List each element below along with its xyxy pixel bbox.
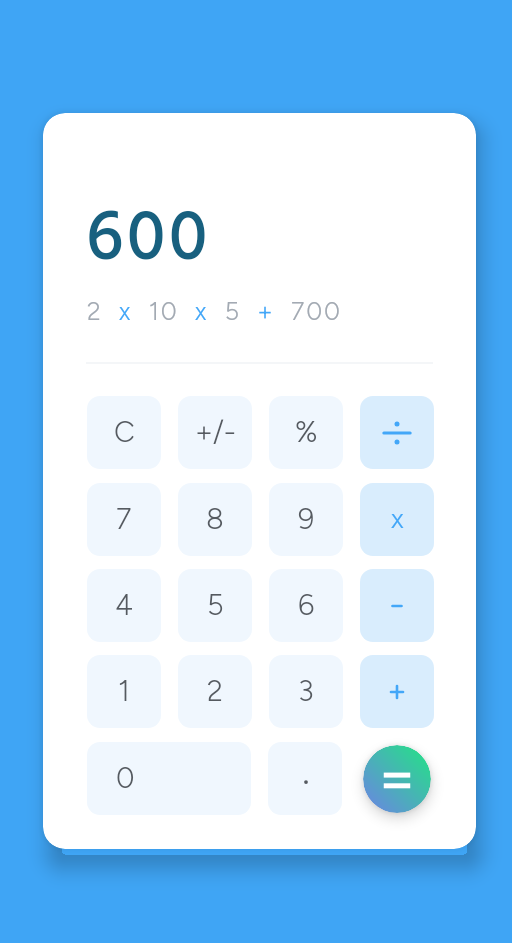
button[interactable]: +/- (178, 396, 252, 469)
button[interactable]: Subtract (360, 569, 434, 642)
button[interactable]: Equals (363, 745, 431, 813)
button[interactable]: 5 (178, 569, 252, 642)
button[interactable]: Add (360, 655, 434, 728)
staticText: 4 (115, 587, 133, 622)
button[interactable]: 7 (87, 483, 161, 556)
button[interactable]: 4 (87, 569, 161, 642)
button[interactable]: 8 (178, 483, 252, 556)
button[interactable]: Divide (360, 396, 434, 469)
button[interactable]: Multiply (360, 483, 434, 556)
staticText: 2 x 10 x 5 + 700 (87, 296, 342, 326)
staticText: 6 (298, 587, 315, 622)
staticText: 1 (118, 673, 130, 708)
button[interactable]: 9 (269, 483, 343, 556)
button[interactable]: 2 (178, 655, 252, 728)
staticText: 5 (207, 587, 224, 622)
button[interactable]: C (87, 396, 161, 469)
staticText: x (391, 501, 404, 535)
staticText: 0 (116, 760, 135, 795)
staticText: C (114, 414, 135, 449)
staticText: 8 (206, 501, 224, 536)
staticText: % (295, 414, 318, 449)
staticText: 7 (116, 501, 132, 536)
button[interactable]: Decimal point (268, 742, 342, 815)
button[interactable]: 6 (269, 569, 343, 642)
staticText: 9 (298, 501, 315, 536)
button[interactable]: % (269, 396, 343, 469)
button[interactable]: 3 (269, 655, 343, 728)
staticText: 600 (86, 184, 211, 298)
staticText: 3 (298, 673, 314, 708)
button[interactable]: 1 (87, 655, 161, 728)
staticText: 2 (207, 673, 223, 708)
button[interactable]: 0 (87, 742, 251, 815)
staticText: +/- (195, 414, 236, 449)
